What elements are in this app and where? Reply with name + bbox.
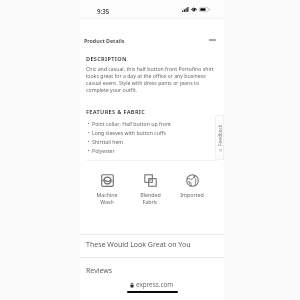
staticText: 9:35 [97, 7, 110, 15]
staticText: Reviews [86, 266, 113, 276]
button[interactable]: Product Details [80, 32, 224, 48]
button[interactable]: Blended [136, 174, 164, 205]
button[interactable]: These Would Look Great on You [80, 235, 224, 257]
staticText: Chic and casual, this half button front … [86, 65, 218, 93]
staticText: Machine [96, 191, 118, 198]
button[interactable]: express.com [80, 278, 224, 291]
button[interactable]: Machine [93, 174, 121, 205]
staticText: Wash [100, 198, 114, 205]
staticText: Fabric [142, 198, 158, 205]
staticText: Imported [180, 191, 204, 198]
staticText: Product Details [84, 37, 125, 44]
button[interactable]: ✕ [215, 115, 224, 160]
button[interactable]: Imported [178, 174, 206, 198]
staticText: These Would Look Great on You [86, 240, 191, 250]
staticText: Point collar; Half button up front [92, 120, 171, 127]
staticText: DESCRIPTION [86, 55, 127, 63]
staticText: ✕ [218, 148, 223, 152]
staticText: Feedback [217, 124, 224, 146]
button[interactable]: Reviews [80, 258, 224, 278]
staticText: FEATURES & FABRIC [86, 108, 146, 116]
staticText: express.com [136, 280, 174, 289]
staticText: Blended [140, 191, 161, 198]
staticText: Long sleeves with button cuffs [92, 129, 166, 136]
staticText: Polyester [92, 147, 115, 154]
staticText: Shirttail hem [92, 138, 124, 145]
